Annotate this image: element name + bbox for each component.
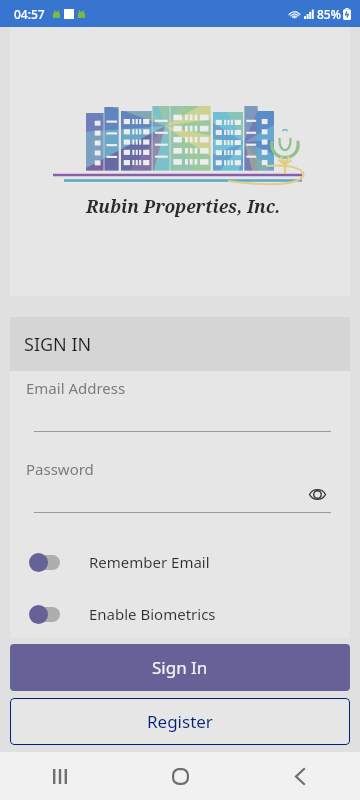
button[interactable]: Remember Email	[10, 545, 350, 579]
button[interactable]: Register	[10, 698, 350, 745]
staticText: SIGN IN	[24, 332, 92, 357]
button[interactable]: Home	[120, 752, 240, 800]
staticText: 04:57	[14, 6, 45, 22]
staticText: Email Address	[26, 378, 126, 398]
button[interactable]: Sign In	[10, 644, 350, 691]
button[interactable]: Enable Biometrics	[10, 597, 350, 631]
staticText: Password	[26, 459, 94, 479]
staticText: Register	[147, 710, 213, 733]
staticText: Rubin Properties, Inc.	[86, 194, 281, 218]
staticText: Remember Email	[89, 552, 210, 572]
staticText: Sign In	[152, 656, 208, 679]
button[interactable]: Back	[240, 752, 360, 800]
button[interactable]: Recents	[0, 752, 120, 800]
button[interactable]: Show password	[304, 481, 330, 507]
staticText: Enable Biometrics	[89, 604, 216, 624]
staticText: 85%	[317, 6, 341, 22]
